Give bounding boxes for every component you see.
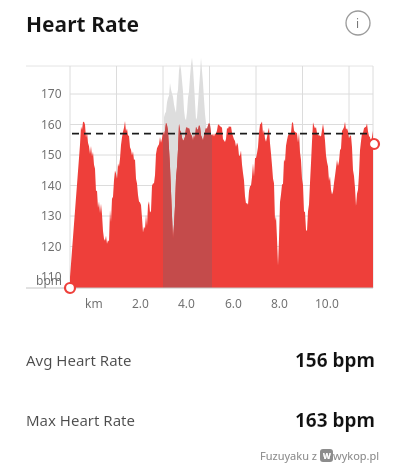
staticText: 8.0 <box>271 295 288 311</box>
staticText: 120 <box>41 238 62 254</box>
staticText: Max Heart Rate <box>26 410 135 430</box>
staticText: 156 bpm <box>295 347 376 373</box>
staticText: bpm <box>36 272 62 288</box>
staticText: W <box>323 450 331 461</box>
staticText: 130 <box>41 207 62 223</box>
button[interactable]: Avg Heart Rate <box>26 345 376 375</box>
staticText: 6.0 <box>225 295 242 311</box>
staticText: 2.0 <box>132 295 149 311</box>
button[interactable] <box>0 0 400 466</box>
staticText: i <box>356 15 360 31</box>
staticText: Heart Rate <box>26 10 140 39</box>
staticText: Avg Heart Rate <box>26 350 132 370</box>
staticText: 163 bpm <box>295 407 376 433</box>
staticText: 10.0 <box>315 295 339 311</box>
staticText: 170 <box>41 85 62 101</box>
staticText: 160 <box>41 116 62 132</box>
staticText: 140 <box>41 177 62 193</box>
button[interactable]: Max Heart Rate <box>26 405 376 435</box>
staticText: Fuzuyaku z <box>260 448 320 463</box>
button[interactable]: Heart Rate <box>26 7 140 41</box>
staticText: wykop.pl <box>333 448 380 463</box>
staticText: 150 <box>41 146 62 162</box>
button[interactable]: Info <box>342 7 374 39</box>
staticText: 110 <box>41 268 62 284</box>
staticText: km <box>85 295 103 311</box>
staticText: 4.0 <box>178 295 195 311</box>
